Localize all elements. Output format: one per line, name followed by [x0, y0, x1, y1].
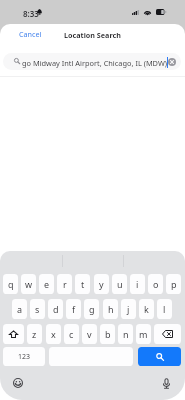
staticText: d	[53, 303, 59, 315]
button[interactable]: n	[118, 324, 133, 344]
staticText: 8:33	[23, 8, 39, 19]
button[interactable]: g	[84, 299, 99, 319]
button[interactable]: Emoji keyboard	[13, 378, 23, 388]
button[interactable]: t	[75, 274, 90, 294]
button[interactable]: Search	[138, 347, 181, 366]
staticText: s	[35, 303, 40, 315]
staticText: q	[8, 278, 14, 290]
staticText: k	[144, 303, 149, 315]
staticText: h	[108, 303, 114, 315]
staticText: x	[51, 328, 56, 340]
button[interactable]: s	[30, 299, 45, 319]
staticText: r	[63, 278, 67, 290]
staticText: 123	[18, 352, 31, 362]
staticText: f	[72, 303, 76, 315]
staticText: b	[105, 328, 111, 340]
staticText: z	[32, 328, 37, 340]
button[interactable]: Shift	[3, 324, 24, 344]
button[interactable]: 123	[3, 347, 45, 366]
button[interactable]: r	[57, 274, 72, 294]
staticText: v	[87, 328, 92, 340]
staticText: a	[17, 303, 23, 315]
staticText: m	[139, 328, 148, 340]
button[interactable]: e	[39, 274, 54, 294]
button[interactable]: z	[27, 324, 42, 344]
button[interactable]: v	[82, 324, 97, 344]
staticText: l	[163, 303, 166, 315]
staticText: c	[69, 328, 74, 340]
staticText: t	[81, 278, 85, 290]
button[interactable]: k	[139, 299, 154, 319]
button[interactable]: y	[94, 274, 109, 294]
button[interactable]: w	[21, 274, 36, 294]
staticText: g	[89, 303, 95, 315]
staticText: e	[44, 278, 50, 290]
staticText: go Midway Intl Airport, Chicago, IL (MDW…	[22, 58, 168, 68]
button[interactable]: p	[166, 274, 181, 294]
button[interactable]: i	[130, 274, 145, 294]
staticText: u	[117, 278, 123, 290]
button[interactable]: m	[136, 324, 151, 344]
staticText: j	[127, 303, 130, 315]
button[interactable]: Clear text	[168, 58, 176, 66]
staticText: w	[25, 278, 33, 290]
button[interactable]: j	[121, 299, 136, 319]
staticText: p	[171, 278, 177, 290]
button[interactable]: Voice input	[162, 378, 171, 389]
button[interactable]: d	[48, 299, 63, 319]
staticText: i	[136, 278, 139, 290]
staticText: n	[123, 328, 129, 340]
button[interactable]: Cancel	[11, 25, 50, 43]
button[interactable]: c	[64, 324, 79, 344]
button[interactable]: b	[100, 324, 115, 344]
staticText: Cancel	[19, 29, 42, 39]
button[interactable]: Backspace	[154, 324, 181, 344]
staticText: y	[99, 278, 104, 290]
button[interactable]: l	[157, 299, 172, 319]
staticText: o	[153, 278, 159, 290]
button[interactable]: f	[66, 299, 81, 319]
button[interactable]	[3, 53, 181, 70]
button[interactable]: u	[112, 274, 127, 294]
button[interactable]: x	[46, 324, 61, 344]
button[interactable]: o	[148, 274, 163, 294]
button[interactable]: q	[3, 274, 18, 294]
staticText: Location Search	[64, 30, 121, 40]
button[interactable]: h	[103, 299, 118, 319]
button[interactable]: a	[12, 299, 27, 319]
